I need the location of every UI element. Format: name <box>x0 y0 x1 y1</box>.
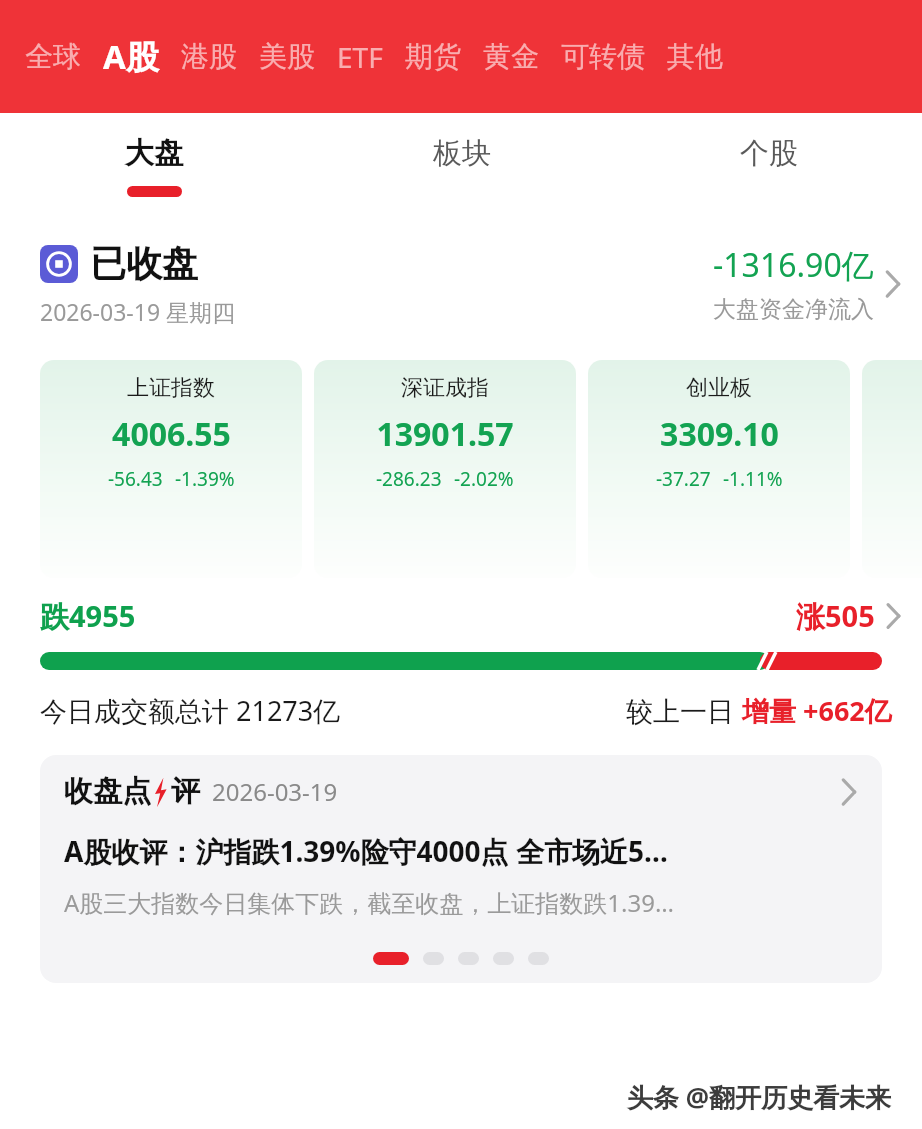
staticText: 头条 @翻开历史看未来 <box>627 1079 892 1115</box>
staticText: A股 <box>103 34 159 79</box>
staticText: 创业板 <box>686 374 752 402</box>
staticText: 可转债 <box>561 39 645 74</box>
staticText: 4006.55 <box>112 412 231 456</box>
staticText: 上证指数 <box>127 374 215 402</box>
button[interactable]: 美股 <box>248 33 326 80</box>
button[interactable]: 期货 <box>394 33 472 80</box>
staticText: 大盘 <box>125 135 183 172</box>
staticText: 增量 +662亿 <box>742 692 892 729</box>
button[interactable]: 黄金 <box>472 33 550 80</box>
button[interactable]: 可转债 <box>550 33 656 80</box>
button[interactable]: 跌4955 <box>40 596 902 636</box>
button[interactable] <box>862 360 922 578</box>
staticText: 港股 <box>181 39 237 74</box>
staticText: A股收评：沪指跌1.39%险守4000点 全市场近5… <box>64 832 668 870</box>
staticText: -2.02% <box>454 466 514 492</box>
staticText: 其他 <box>667 39 723 74</box>
button[interactable]: 创业板 <box>588 360 850 578</box>
staticText: 全球 <box>25 39 81 74</box>
staticText: 涨505 <box>796 596 875 636</box>
staticText: A股三大指数今日集体下跌，截至收盘，上证指数跌1.39… <box>64 886 674 919</box>
staticText: -1.11% <box>723 466 783 492</box>
staticText: 美股 <box>259 39 315 74</box>
button[interactable]: 大盘 <box>0 113 308 221</box>
button[interactable]: 深证成指 <box>314 360 576 578</box>
staticText: 个股 <box>740 135 798 172</box>
staticText: 跌4955 <box>40 596 136 636</box>
button[interactable]: ETF <box>326 32 394 82</box>
button[interactable]: 个股 <box>615 113 922 221</box>
staticText: 3309.10 <box>660 412 779 456</box>
staticText: 2026-03-19 <box>212 775 338 808</box>
staticText: -56.43 <box>108 466 163 492</box>
staticText: 板块 <box>433 135 491 172</box>
button[interactable]: 上证指数 <box>40 360 302 578</box>
button[interactable]: 全球 <box>14 33 92 80</box>
staticText: 收盘点 <box>64 773 151 810</box>
staticText: 已收盘 <box>90 241 198 286</box>
staticText: 评 <box>171 773 200 810</box>
staticText: 大盘资金净流入 <box>713 295 874 324</box>
staticText: -1316.90亿 <box>713 243 874 287</box>
staticText: 黄金 <box>483 39 539 74</box>
button[interactable]: 收盘点 <box>40 755 882 983</box>
button[interactable]: 其他 <box>656 33 734 80</box>
staticText: 2026-03-19 星期四 <box>40 296 236 327</box>
staticText: ETF <box>337 38 383 76</box>
staticText: -1.39% <box>175 466 235 492</box>
staticText: 深证成指 <box>401 374 489 402</box>
staticText: -286.23 <box>376 466 442 492</box>
staticText: 13901.57 <box>376 412 514 456</box>
staticText: 今日成交额总计 21273亿 <box>40 692 341 729</box>
button[interactable]: -1316.90亿 <box>713 243 902 324</box>
button[interactable]: A股 <box>92 28 170 85</box>
button[interactable]: 板块 <box>308 113 615 221</box>
staticText: 较上一日 <box>626 692 742 729</box>
button[interactable]: 港股 <box>170 33 248 80</box>
staticText: 期货 <box>405 39 461 74</box>
staticText: -37.27 <box>656 466 711 492</box>
